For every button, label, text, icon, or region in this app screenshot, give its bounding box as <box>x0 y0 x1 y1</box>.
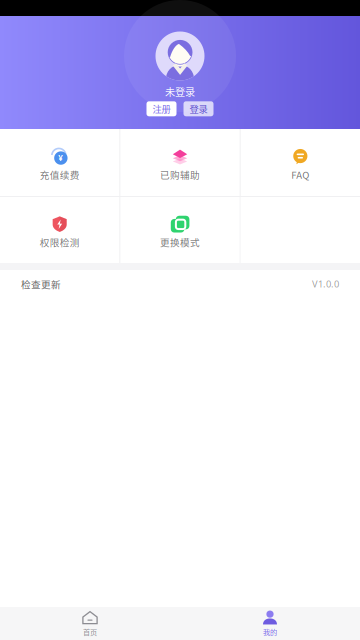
button[interactable]: 已购辅助 <box>120 129 240 196</box>
button[interactable]: 注册 <box>146 101 176 116</box>
button[interactable]: 登录 <box>183 101 213 116</box>
button[interactable]: FAQ <box>241 129 360 196</box>
staticText: 登录 <box>189 102 207 115</box>
staticText: ¥ <box>58 153 63 163</box>
staticText: 更换模式 <box>160 235 200 249</box>
staticText: V1.0.0 <box>312 278 339 290</box>
button[interactable]: 更换模式 <box>120 197 240 263</box>
staticText: 注册 <box>152 102 170 115</box>
staticText: 首页 <box>83 626 97 637</box>
button[interactable]: ¥ <box>0 129 119 196</box>
staticText: 权限检测 <box>40 235 80 249</box>
button[interactable]: 权限检测 <box>0 197 119 263</box>
staticText: 我的 <box>263 626 277 637</box>
staticText: 充值续费 <box>40 168 80 181</box>
staticText: 未登录 <box>165 84 195 99</box>
staticText: 已购辅助 <box>160 168 200 181</box>
button[interactable]: 首页 <box>0 607 180 640</box>
staticText: 检查更新 <box>21 277 61 291</box>
staticText: FAQ <box>291 168 309 181</box>
button[interactable]: 我的 <box>180 607 360 640</box>
button[interactable]: 检查更新 <box>0 270 360 298</box>
